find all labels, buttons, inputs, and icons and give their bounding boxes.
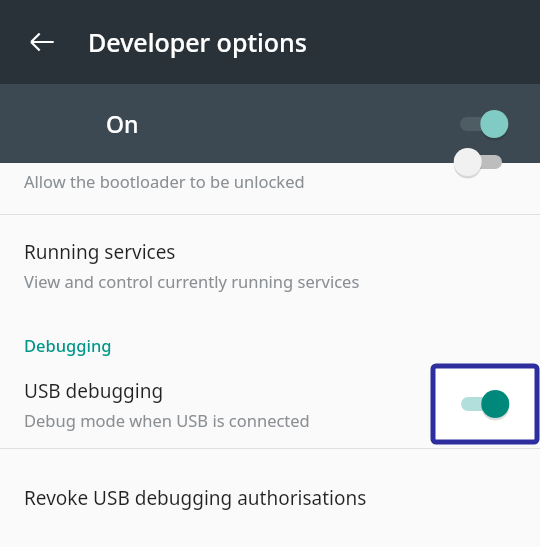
button[interactable]: On	[0, 84, 540, 163]
staticText: USB debugging	[24, 378, 164, 404]
staticText: View and control currently running servi…	[24, 270, 360, 292]
staticText: Debugging	[24, 334, 112, 356]
staticText: Running services	[24, 239, 176, 265]
staticText: Revoke USB debugging authorisations	[24, 485, 367, 511]
button[interactable]: Revoke USB debugging authorisations	[0, 449, 540, 547]
button[interactable]: USB debugging switch	[433, 366, 537, 442]
button[interactable]: Back	[18, 18, 66, 66]
staticText: Allow the bootloader to be unlocked	[24, 170, 305, 192]
staticText: On	[106, 108, 139, 139]
staticText: Debug mode when USB is connected	[24, 409, 310, 431]
staticText: Developer options	[88, 25, 307, 59]
button[interactable]: Running services	[0, 215, 540, 314]
button[interactable]: USB debugging	[0, 360, 540, 448]
